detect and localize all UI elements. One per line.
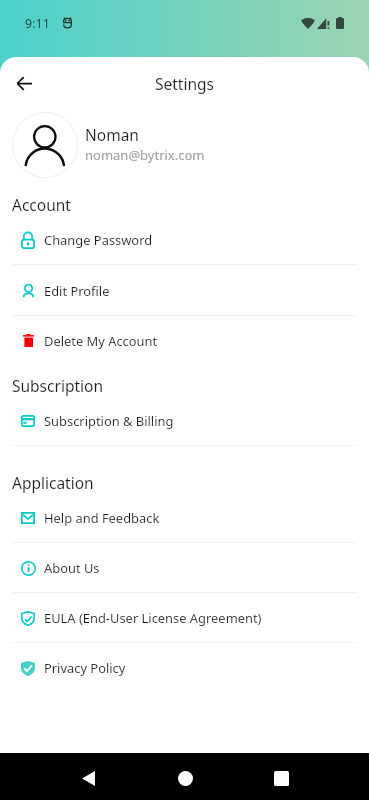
button[interactable]: EULA (End-User License Agreement)	[0, 593, 369, 643]
staticText: Application	[12, 472, 94, 493]
button[interactable]: Noman	[0, 110, 369, 180]
button[interactable]: Delete My Account	[0, 316, 369, 366]
staticText: Subscription	[12, 375, 103, 396]
staticText: Settings	[155, 73, 214, 94]
staticText: Help and Feedback	[44, 509, 160, 527]
staticText: Subscription & Billing	[44, 412, 174, 430]
staticText: About Us	[44, 559, 100, 577]
staticText: Privacy Policy	[44, 659, 126, 677]
button[interactable]: Back	[8, 67, 40, 99]
staticText: Edit Profile	[44, 282, 110, 300]
button[interactable]: Edit Profile	[0, 265, 369, 316]
button[interactable]: Change Password	[0, 215, 369, 265]
staticText: 9:11	[25, 15, 50, 32]
staticText: Noman	[85, 124, 139, 145]
staticText: Account	[12, 194, 71, 215]
button[interactable]: Back	[65, 755, 111, 800]
button[interactable]: Help and Feedback	[0, 493, 369, 543]
button[interactable]: Home	[162, 755, 208, 800]
button[interactable]: About Us	[0, 543, 369, 593]
staticText: Delete My Account	[44, 332, 158, 350]
button[interactable]: Subscription & Billing	[0, 396, 369, 446]
button[interactable]: Privacy Policy	[0, 643, 369, 693]
staticText: EULA (End-User License Agreement)	[44, 609, 262, 627]
staticText: Change Password	[44, 231, 153, 249]
button[interactable]: Recent apps	[258, 755, 304, 800]
staticText: noman@bytrix.com	[85, 146, 205, 164]
